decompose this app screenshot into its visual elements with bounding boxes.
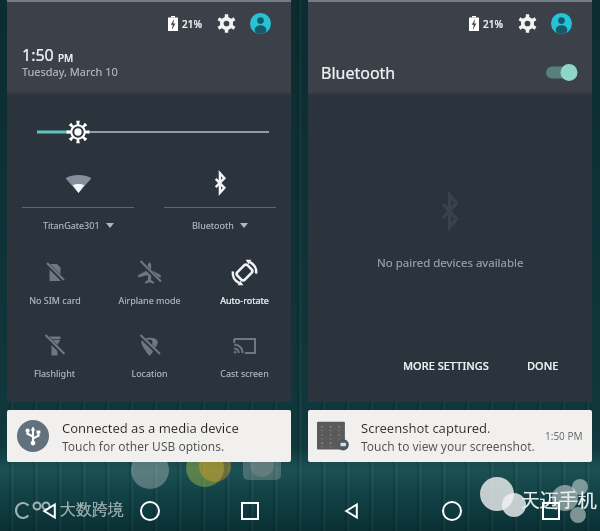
button[interactable]: Home [100,494,200,528]
staticText: Connected as a media device [62,419,239,437]
staticText: Tuesday, March 10 [22,64,118,79]
button[interactable]: Location [102,329,197,395]
staticText: No SIM card [29,294,81,306]
staticText: 21% [483,17,503,31]
button[interactable]: Settings [518,14,537,33]
staticText: Touch to view your screenshot. [361,438,535,454]
staticText: DONE [527,358,559,373]
staticText: TitanGate301 [43,219,100,231]
button[interactable]: Flashlight [7,329,102,395]
staticText: 1:50 PM [545,429,583,443]
staticText: 大数跨境 [60,500,124,520]
staticText: Flashlight [34,367,75,379]
button[interactable]: Bluetooth on/off [542,60,580,85]
staticText: Bluetooth [192,219,234,231]
button[interactable]: No SIM card [7,256,102,322]
button[interactable]: Bluetooth [149,172,291,246]
staticText: Touch for other USB options. [62,438,225,454]
staticText: Screenshot captured. [361,419,491,437]
staticText: 21% [182,17,202,31]
button[interactable]: Airplane mode [102,256,197,322]
button[interactable]: Settings [217,14,236,33]
button[interactable]: User profile [551,13,572,34]
button[interactable]: Recent apps [200,494,300,528]
staticText: MORE SETTINGS [403,358,489,373]
button[interactable]: Home [402,494,501,528]
staticText: Bluetooth [321,62,396,84]
button[interactable]: User profile [250,13,271,34]
staticText: 天迈手机 [521,489,597,513]
button[interactable]: Recent apps [501,494,600,528]
button[interactable]: DONE [519,350,567,381]
staticText: Location [131,367,168,379]
staticText: Auto-rotate [220,294,269,306]
button[interactable]: Back [0,494,100,528]
staticText: PM [58,51,74,65]
staticText: Airplane mode [118,294,181,306]
button[interactable]: Auto-rotate [197,256,291,322]
button[interactable]: Back [302,494,402,528]
staticText: No paired devices available [377,255,524,271]
button[interactable]: MORE SETTINGS [395,350,497,381]
staticText: 1:50 [22,44,54,66]
button[interactable]: Screenshot captured. [308,410,592,462]
button[interactable]: Cast screen [197,329,291,395]
button[interactable]: TitanGate301 [7,172,149,246]
button[interactable]: Connected as a media device [7,410,291,462]
staticText: Cast screen [220,367,269,379]
